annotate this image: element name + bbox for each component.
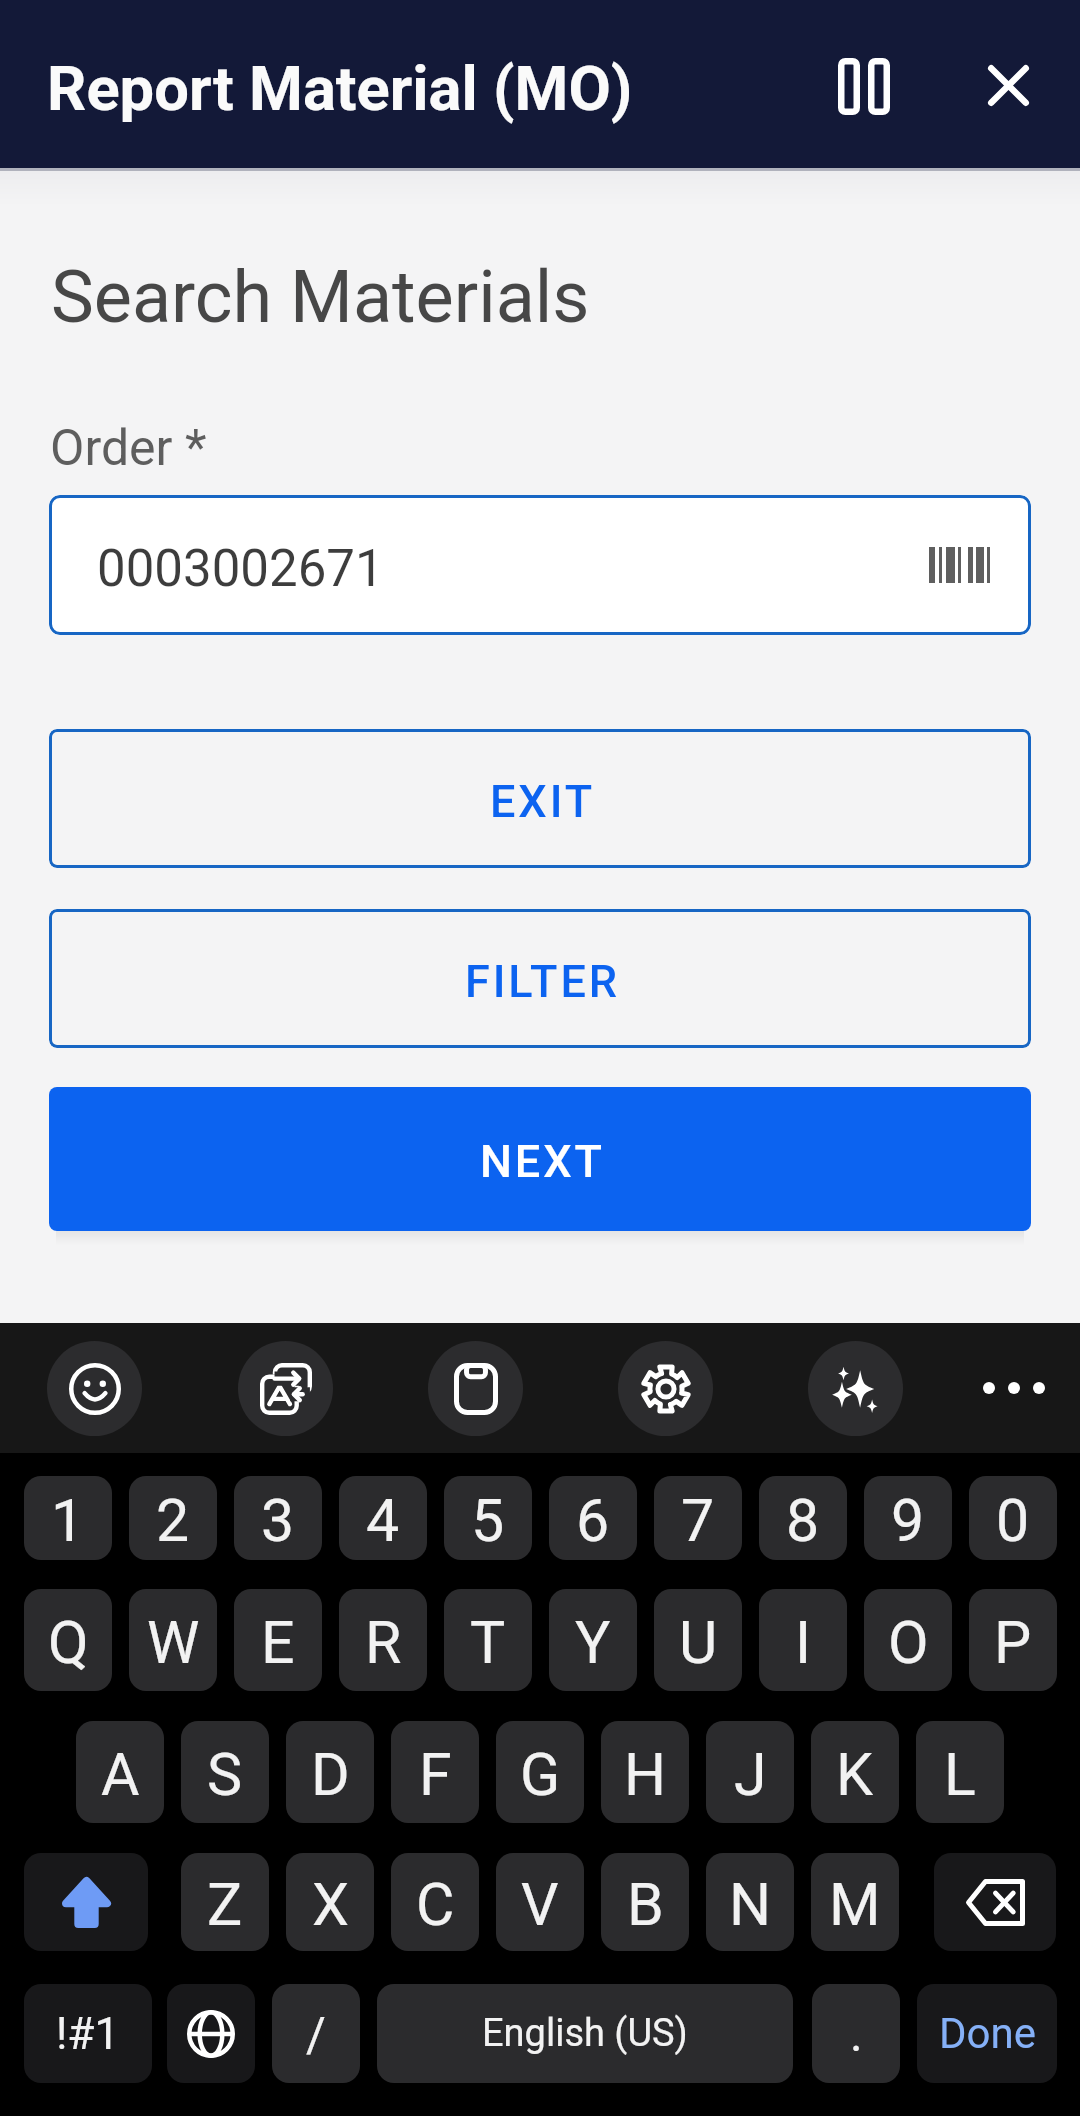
button[interactable]: J	[706, 1721, 794, 1823]
staticText: E	[261, 1608, 295, 1677]
staticText: C	[416, 1870, 455, 1939]
staticText: F	[419, 1740, 452, 1809]
button[interactable]: F	[391, 1721, 479, 1823]
button[interactable]: W	[129, 1589, 217, 1691]
staticText: 2	[156, 1486, 190, 1555]
staticText: English (US)	[482, 2011, 688, 2056]
staticText: B	[627, 1870, 664, 1939]
staticText: H	[624, 1740, 667, 1809]
staticText: K	[836, 1740, 874, 1809]
staticText: Q	[48, 1608, 89, 1677]
staticText: W	[147, 1608, 200, 1677]
staticText: 5	[471, 1486, 505, 1555]
button[interactable]: I	[759, 1589, 847, 1691]
button[interactable]: H	[601, 1721, 689, 1823]
staticText: Y	[575, 1608, 611, 1677]
button[interactable]: English (US)	[377, 1984, 793, 2083]
staticText: L	[944, 1740, 976, 1809]
button[interactable]: 8	[759, 1476, 847, 1560]
staticText: O	[888, 1608, 929, 1677]
button[interactable]: 4	[339, 1476, 427, 1560]
button[interactable]: 5	[444, 1476, 532, 1560]
button[interactable]: Y	[549, 1589, 637, 1691]
button[interactable]: X	[286, 1853, 374, 1951]
button[interactable]: Emoji	[47, 1341, 142, 1436]
staticText: M	[829, 1870, 881, 1939]
button[interactable]: P	[969, 1589, 1057, 1691]
button[interactable]: S	[181, 1721, 269, 1823]
button[interactable]: O	[864, 1589, 952, 1691]
button[interactable]: AI assist	[808, 1341, 903, 1436]
button[interactable]: M	[811, 1853, 899, 1951]
button[interactable]: N	[706, 1853, 794, 1951]
staticText: /	[306, 2006, 326, 2062]
button[interactable]: E	[234, 1589, 322, 1691]
staticText: 3	[261, 1486, 295, 1555]
staticText: 0003002671	[97, 539, 384, 599]
staticText: 1	[51, 1486, 85, 1555]
button[interactable]: Translate	[238, 1341, 333, 1436]
staticText: I	[795, 1608, 812, 1677]
button[interactable]: Z	[181, 1853, 269, 1951]
staticText: U	[679, 1608, 718, 1677]
staticText: G	[520, 1740, 561, 1809]
button[interactable]: 3	[234, 1476, 322, 1560]
staticText: 6	[576, 1486, 610, 1555]
staticText: Search Materials	[51, 255, 590, 339]
button[interactable]: C	[391, 1853, 479, 1951]
staticText: .	[850, 2006, 863, 2062]
staticText: EXIT	[490, 775, 595, 828]
button[interactable]: NEXT	[49, 1087, 1031, 1231]
button[interactable]: Shift	[24, 1853, 148, 1951]
staticText: FILTER	[465, 955, 620, 1008]
staticText: 7	[681, 1486, 715, 1555]
button[interactable]: More options	[969, 1343, 1059, 1433]
button[interactable]: !#1	[24, 1984, 152, 2083]
staticText: Done	[939, 2009, 1036, 2058]
button[interactable]: B	[601, 1853, 689, 1951]
button[interactable]: 7	[654, 1476, 742, 1560]
button[interactable]: Done	[917, 1984, 1057, 2083]
button[interactable]: 6	[549, 1476, 637, 1560]
staticText: Z	[207, 1870, 243, 1939]
button[interactable]: U	[654, 1589, 742, 1691]
staticText: R	[365, 1608, 402, 1677]
staticText: S	[207, 1740, 243, 1809]
button[interactable]: Q	[24, 1589, 112, 1691]
button[interactable]: 0	[969, 1476, 1057, 1560]
button[interactable]: K	[811, 1721, 899, 1823]
staticText: 4	[366, 1486, 400, 1555]
button[interactable]: 0003002671	[49, 495, 1031, 635]
button[interactable]: G	[496, 1721, 584, 1823]
button[interactable]: Settings	[618, 1341, 713, 1436]
button[interactable]: /	[272, 1984, 360, 2083]
button[interactable]: A	[76, 1721, 164, 1823]
button[interactable]: Clipboard	[428, 1341, 523, 1436]
button[interactable]: 1	[24, 1476, 112, 1560]
button[interactable]: 2	[129, 1476, 217, 1560]
staticText: J	[734, 1740, 767, 1809]
staticText: D	[311, 1740, 350, 1809]
button[interactable]: .	[812, 1984, 900, 2083]
staticText: 8	[786, 1486, 820, 1555]
button[interactable]: 9	[864, 1476, 952, 1560]
button[interactable]: Split screen	[814, 36, 914, 136]
button[interactable]: Change language	[167, 1984, 255, 2083]
button[interactable]: EXIT	[49, 729, 1031, 868]
staticText: V	[521, 1870, 559, 1939]
button[interactable]: Backspace	[934, 1853, 1056, 1951]
button[interactable]: FILTER	[49, 909, 1031, 1048]
staticText: X	[312, 1870, 349, 1939]
staticText: Report Material (MO)	[47, 53, 633, 125]
staticText: Order *	[50, 419, 207, 478]
staticText: 9	[891, 1486, 925, 1555]
button[interactable]: Close	[958, 35, 1058, 135]
button[interactable]: R	[339, 1589, 427, 1691]
button[interactable]: T	[444, 1589, 532, 1691]
button[interactable]: L	[916, 1721, 1004, 1823]
staticText: T	[470, 1608, 506, 1677]
staticText: 0	[996, 1486, 1030, 1555]
button[interactable]: D	[286, 1721, 374, 1823]
staticText: !#1	[56, 2008, 120, 2060]
button[interactable]: V	[496, 1853, 584, 1951]
